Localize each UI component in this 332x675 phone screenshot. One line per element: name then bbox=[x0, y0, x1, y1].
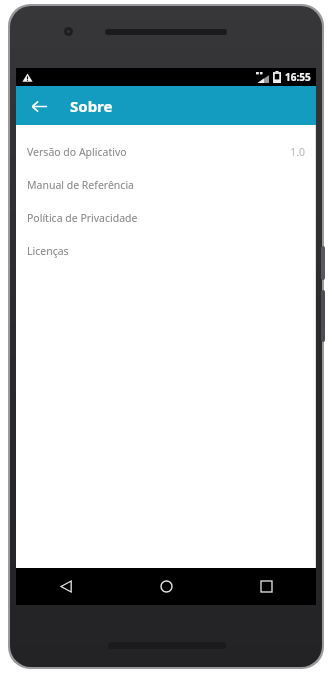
staticText: Sobre bbox=[70, 96, 113, 116]
button[interactable]: Recent apps bbox=[216, 568, 316, 605]
button[interactable]: Versão do Aplicativo bbox=[16, 135, 316, 168]
button[interactable]: Licenças bbox=[16, 234, 316, 267]
staticText: Política de Privacidade bbox=[27, 211, 305, 225]
button[interactable]: Home bbox=[116, 568, 216, 605]
button[interactable]: Back bbox=[22, 89, 56, 123]
button[interactable]: Manual de Referência bbox=[16, 168, 316, 201]
staticText: Manual de Referência bbox=[27, 178, 305, 192]
button[interactable]: Política de Privacidade bbox=[16, 201, 316, 234]
staticText: Versão do Aplicativo bbox=[27, 145, 290, 159]
staticText: 1.0 bbox=[290, 145, 305, 159]
staticText: Licenças bbox=[27, 244, 305, 258]
staticText: 16:55 bbox=[285, 70, 311, 84]
button[interactable]: Back bbox=[16, 568, 116, 605]
